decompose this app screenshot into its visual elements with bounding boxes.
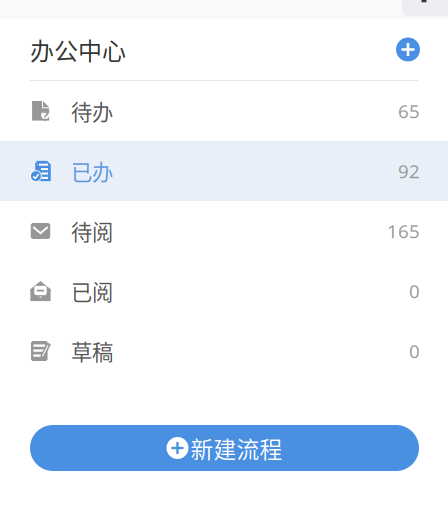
staticText: ? bbox=[42, 107, 48, 125]
button[interactable]: 已阅 bbox=[0, 261, 448, 321]
button[interactable]: 新建 bbox=[396, 37, 420, 61]
staticText: 待阅 bbox=[71, 216, 113, 246]
button[interactable]: 已办 bbox=[0, 141, 448, 201]
button[interactable]: 搜索 bbox=[402, 0, 448, 16]
staticText: 办公中心 bbox=[30, 32, 126, 67]
staticText: 0 bbox=[409, 279, 420, 303]
button[interactable]: 草稿 bbox=[0, 321, 448, 381]
staticText: 0 bbox=[409, 339, 420, 363]
staticText: 65 bbox=[398, 99, 420, 123]
staticText: 165 bbox=[387, 219, 420, 243]
button[interactable]: 待阅 bbox=[0, 201, 448, 261]
staticText: 待办 bbox=[71, 96, 113, 126]
staticText: 92 bbox=[398, 159, 420, 183]
staticText: 新建流程 bbox=[190, 432, 282, 464]
staticText: 草稿 bbox=[71, 336, 113, 366]
staticText: 已阅 bbox=[71, 276, 113, 306]
button[interactable]: 新建流程 bbox=[30, 425, 419, 471]
button[interactable]: ? bbox=[0, 81, 448, 141]
staticText: 已办 bbox=[71, 156, 113, 186]
